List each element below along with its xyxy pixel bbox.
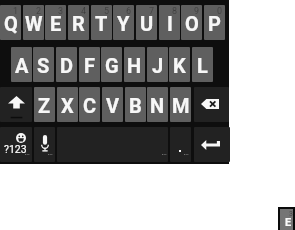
staticText: J <box>152 54 164 77</box>
staticText: T <box>95 12 108 35</box>
button[interactable]: M <box>170 87 191 122</box>
staticText: 1 <box>13 6 19 17</box>
staticText: N <box>150 94 165 117</box>
button[interactable]: W <box>23 5 44 40</box>
staticText: X <box>61 94 74 117</box>
staticText: W <box>25 12 43 35</box>
button[interactable]: K <box>169 47 190 82</box>
button[interactable]: T <box>91 5 112 40</box>
button[interactable]: Symbols <box>0 127 32 162</box>
staticText: E <box>285 216 292 229</box>
button[interactable]: Delete <box>194 87 229 122</box>
button[interactable]: G <box>101 47 122 82</box>
staticText: Q <box>4 12 18 35</box>
staticText: 3 <box>289 210 293 218</box>
staticText: 3 <box>58 6 64 17</box>
staticText: 8 <box>172 6 178 17</box>
button[interactable]: Period <box>170 127 191 162</box>
staticText: 4 <box>81 6 87 17</box>
staticText: G <box>105 54 119 77</box>
staticText: V <box>106 94 120 117</box>
staticText: 9 <box>194 6 200 17</box>
staticText: 7 <box>149 6 155 17</box>
button[interactable]: I <box>159 5 180 40</box>
button[interactable]: S <box>33 47 54 82</box>
button[interactable]: A <box>11 47 32 82</box>
button[interactable]: H <box>124 47 145 82</box>
staticText: 5 <box>104 6 110 17</box>
button[interactable]: B <box>125 87 146 122</box>
staticText: O <box>185 12 199 35</box>
button[interactable]: X <box>57 87 78 122</box>
button[interactable]: E key <box>278 207 295 230</box>
staticText: M <box>172 94 190 117</box>
button[interactable]: N <box>147 87 168 122</box>
staticText: Y <box>117 12 130 35</box>
button[interactable]: D <box>56 47 77 82</box>
staticText: L <box>197 54 208 77</box>
staticText: H <box>127 54 142 77</box>
button[interactable]: F <box>79 47 100 82</box>
button[interactable]: V <box>102 87 123 122</box>
button[interactable]: R <box>68 5 89 40</box>
button[interactable]: E <box>45 5 66 40</box>
staticText: S <box>37 54 50 77</box>
button[interactable]: Z <box>34 87 55 122</box>
button[interactable]: Voice input <box>34 127 55 162</box>
staticText: K <box>173 54 186 77</box>
button[interactable]: U <box>136 5 157 40</box>
staticText: U <box>140 12 154 35</box>
staticText: 2 <box>36 6 42 17</box>
button[interactable]: Enter <box>194 127 230 162</box>
staticText: C <box>83 94 97 117</box>
staticText: ?123 <box>4 143 27 155</box>
staticText: Z <box>38 94 51 117</box>
staticText: D <box>60 54 73 77</box>
staticText: A <box>15 54 29 77</box>
button[interactable]: J <box>147 47 168 82</box>
staticText: E <box>50 12 62 35</box>
staticText: 0 <box>217 6 223 17</box>
button[interactable]: L <box>192 47 213 82</box>
staticText: R <box>72 12 85 35</box>
button[interactable]: Y <box>113 5 134 40</box>
button[interactable]: Shift <box>0 87 32 122</box>
staticText: 6 <box>126 6 132 17</box>
staticText: P <box>208 12 221 35</box>
staticText: F <box>84 54 95 77</box>
staticText: I <box>167 12 173 35</box>
button[interactable]: C <box>79 87 100 122</box>
button[interactable]: O <box>181 5 202 40</box>
button[interactable]: P <box>204 5 225 40</box>
staticText: B <box>129 94 142 117</box>
button[interactable]: Q <box>0 5 21 40</box>
